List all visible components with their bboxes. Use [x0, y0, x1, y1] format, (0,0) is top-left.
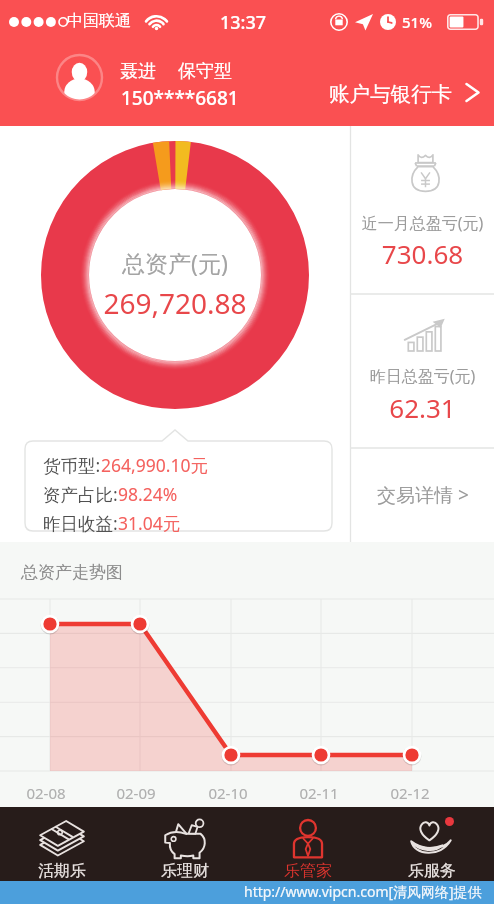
- staticText: 02-12: [370, 783, 450, 803]
- staticText: 730.68: [351, 236, 494, 271]
- staticText: 账户与银行卡: [329, 81, 452, 107]
- staticText: http://www.vipcn.com[清风网络]提供: [244, 882, 482, 901]
- button[interactable]: 活期乐: [0, 807, 123, 904]
- staticText: 总资产走势图: [21, 562, 123, 583]
- button[interactable]: 近一月总盈亏(元): [351, 126, 494, 294]
- staticText: 昨日总盈亏(元): [351, 365, 494, 387]
- staticText: 聂进: [120, 60, 156, 83]
- staticText: 资产占比:: [43, 482, 118, 506]
- staticText: 货币型:: [43, 453, 101, 477]
- button[interactable]: 交易详情 >: [351, 448, 494, 542]
- staticText: 乐管家: [284, 861, 332, 881]
- button[interactable]: 乐服务: [370, 807, 494, 904]
- staticText: 总资产(元): [25, 247, 325, 278]
- staticText: 昨日收益:: [43, 511, 118, 535]
- staticText: 活期乐: [38, 861, 86, 881]
- button[interactable]: 乐理财: [123, 807, 246, 904]
- staticText: 乐理财: [161, 861, 209, 881]
- staticText: 02-11: [279, 783, 359, 803]
- staticText: 31.04元: [118, 511, 181, 535]
- staticText: 51%: [402, 12, 432, 32]
- staticText: 乐服务: [408, 861, 456, 881]
- staticText: 交易详情 >: [377, 482, 469, 508]
- staticText: 62.31: [351, 390, 494, 425]
- staticText: 中国联通: [67, 11, 131, 31]
- button[interactable]: 昨日总盈亏(元): [351, 294, 494, 448]
- staticText: 13:37: [220, 10, 267, 35]
- staticText: 02-09: [96, 783, 176, 803]
- button[interactable]: 乐管家: [246, 807, 370, 904]
- staticText: 264,990.10元: [101, 453, 208, 477]
- staticText: 保守型: [178, 60, 232, 83]
- staticText: 02-10: [188, 783, 268, 803]
- staticText: 269,720.88: [25, 284, 325, 322]
- button[interactable]: 聂进: [0, 45, 494, 126]
- staticText: 近一月总盈亏(元): [351, 212, 494, 234]
- staticText: 02-08: [6, 783, 86, 803]
- staticText: 98.24%: [118, 482, 178, 506]
- staticText: 150****6681: [121, 85, 239, 111]
